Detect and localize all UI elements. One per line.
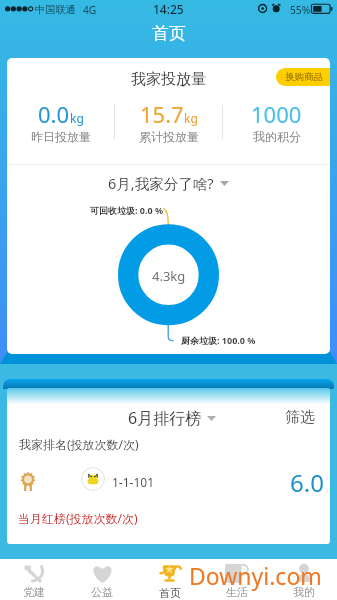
staticText: 1000 — [251, 99, 302, 129]
staticText: 6.0 — [290, 466, 324, 494]
button[interactable]: 1000 — [223, 99, 330, 145]
other: 我的 — [294, 564, 314, 583]
button[interactable]: 筛选 — [285, 408, 315, 427]
staticText: 党建 — [23, 585, 45, 599]
staticText: 昨日投放量 — [31, 129, 91, 144]
button[interactable]: 生活 — [203, 559, 270, 600]
button[interactable]: 我的 — [270, 559, 337, 600]
staticText: 55% — [290, 3, 311, 17]
staticText: kg — [70, 110, 84, 126]
other: 生活 — [225, 564, 248, 583]
button[interactable]: 公益 — [68, 559, 136, 600]
button[interactable]: 1-1-101 — [7, 466, 330, 494]
staticText: kg — [184, 110, 198, 126]
staticText: 生活 — [226, 585, 248, 599]
button[interactable]: 换购商品 — [276, 68, 330, 86]
button[interactable]: 首页 — [136, 559, 203, 600]
staticText: 厨余垃圾: 100.0 % — [181, 334, 256, 346]
staticText: 当月红榜(投放次数/次) — [18, 510, 138, 526]
staticText: 4.3kg — [152, 267, 186, 285]
staticText: 1-1-101 — [112, 474, 155, 490]
staticText: Downyi.com — [189, 560, 322, 591]
button[interactable]: 党建 — [0, 559, 68, 600]
staticText: 首页 — [152, 23, 186, 44]
staticText: 中国联通 — [35, 3, 76, 16]
staticText: 换购商品 — [285, 71, 323, 83]
staticText: 公益 — [91, 585, 113, 599]
staticText: 我的积分 — [253, 129, 301, 144]
other: 党建 — [24, 564, 45, 583]
button[interactable]: 15.7 — [115, 99, 222, 145]
other: 公益 — [91, 564, 114, 583]
staticText: 可回收垃圾: 0.0 % — [90, 204, 164, 216]
staticText: 累计投放量 — [139, 129, 199, 144]
staticText: 我的 — [293, 585, 315, 599]
staticText: 我家排名(投放次数/次) — [19, 436, 139, 452]
staticText: 首页 — [159, 586, 181, 600]
button[interactable]: 0.0 — [7, 99, 114, 145]
staticText: 15.7 — [140, 99, 184, 129]
staticText: 6月排行榜 — [128, 407, 202, 429]
staticText: 0.0 — [38, 99, 70, 129]
staticText: 4G — [83, 3, 97, 17]
staticText: 6月,我家分了啥? — [108, 173, 214, 193]
staticText: 筛选 — [285, 408, 315, 427]
other: 首页 — [157, 564, 182, 584]
staticText: 我家投放量 — [131, 70, 206, 89]
staticText: 14:25 — [153, 1, 184, 17]
